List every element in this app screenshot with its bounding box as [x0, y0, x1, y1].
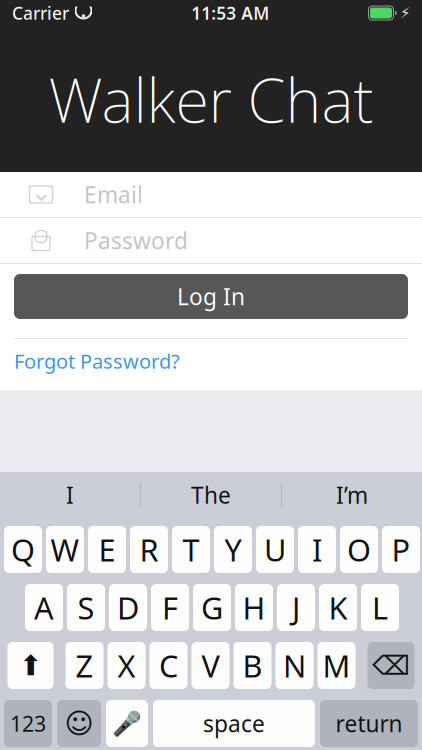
button[interactable]: N: [275, 642, 313, 689]
staticText: 🎤: [112, 710, 142, 737]
staticText: G: [201, 587, 223, 628]
button[interactable]: K: [319, 584, 357, 631]
staticText: T: [182, 529, 199, 570]
staticText: ☺: [64, 708, 93, 739]
button[interactable]: O: [340, 526, 378, 573]
staticText: A: [34, 587, 54, 628]
staticText: C: [159, 645, 178, 686]
button[interactable]: Delete: [367, 642, 414, 689]
button[interactable]: F: [151, 584, 189, 631]
button[interactable]: C: [149, 642, 187, 689]
staticText: E: [98, 529, 115, 570]
button[interactable]: D: [109, 584, 147, 631]
staticText: O: [347, 529, 371, 570]
button[interactable]: G: [193, 584, 231, 631]
staticText: H: [242, 587, 265, 628]
staticText: I’m: [336, 480, 368, 510]
staticText: D: [117, 587, 139, 628]
button[interactable]: Z: [65, 642, 103, 689]
staticText: Z: [75, 645, 93, 686]
button[interactable]: H: [235, 584, 273, 631]
staticText: The: [191, 480, 231, 510]
button[interactable]: E: [88, 526, 126, 573]
button[interactable]: The: [141, 472, 281, 518]
button[interactable]: I: [0, 472, 140, 518]
staticText: S: [77, 587, 94, 628]
button[interactable]: L: [361, 584, 399, 631]
staticText: space: [203, 708, 265, 738]
button[interactable]: U: [256, 526, 294, 573]
staticText: ⌄: [30, 178, 51, 206]
staticText: Carrier: [12, 1, 69, 24]
staticText: Forgot Password?: [14, 348, 180, 374]
button[interactable]: space: [153, 700, 315, 747]
staticText: Q: [11, 529, 35, 570]
staticText: ⬆: [19, 650, 42, 681]
button[interactable]: 123: [4, 700, 52, 747]
staticText: Email: [84, 179, 143, 209]
button[interactable]: I: [298, 526, 336, 573]
staticText: 11:53 AM: [191, 1, 269, 24]
staticText: return: [335, 708, 402, 738]
button[interactable]: return: [320, 700, 418, 747]
staticText: K: [328, 587, 347, 628]
button[interactable]: R: [130, 526, 168, 573]
button[interactable]: Forgot Password?: [0, 339, 422, 383]
button[interactable]: X: [107, 642, 145, 689]
button[interactable]: ⌄: [0, 172, 422, 217]
staticText: N: [283, 645, 306, 686]
button[interactable]: I’m: [282, 472, 422, 518]
button[interactable]: V: [191, 642, 229, 689]
button[interactable]: B: [233, 642, 271, 689]
button[interactable]: P: [382, 526, 420, 573]
staticText: Walker Chat: [48, 58, 373, 140]
staticText: I: [312, 529, 322, 570]
staticText: V: [201, 645, 219, 686]
staticText: J: [292, 587, 300, 628]
button[interactable]: S: [67, 584, 105, 631]
button[interactable]: Dictate: [106, 700, 148, 747]
button[interactable]: Y: [214, 526, 252, 573]
button[interactable]: Emoji: [57, 700, 101, 747]
button[interactable]: M: [317, 642, 355, 689]
staticText: P: [391, 529, 410, 570]
button[interactable]: Q: [4, 526, 42, 573]
staticText: R: [139, 529, 158, 570]
button[interactable]: Log In: [14, 274, 408, 319]
staticText: F: [162, 587, 178, 628]
staticText: M: [322, 645, 350, 686]
staticText: Log In: [177, 281, 245, 311]
staticText: L: [372, 587, 388, 628]
staticText: ⚡︎: [400, 5, 410, 21]
staticText: ⌫: [372, 650, 410, 681]
staticText: U: [264, 529, 286, 570]
button[interactable]: T: [172, 526, 210, 573]
button[interactable]: J: [277, 584, 315, 631]
button[interactable]: Password: [0, 218, 422, 263]
staticText: 123: [10, 709, 46, 738]
button[interactable]: W: [46, 526, 84, 573]
staticText: I: [66, 480, 74, 510]
staticText: X: [117, 645, 135, 686]
button[interactable]: Shift: [7, 642, 53, 689]
staticText: Password: [84, 225, 188, 255]
staticText: Y: [224, 529, 241, 570]
staticText: W: [50, 529, 79, 570]
staticText: B: [242, 645, 262, 686]
button[interactable]: A: [25, 584, 63, 631]
